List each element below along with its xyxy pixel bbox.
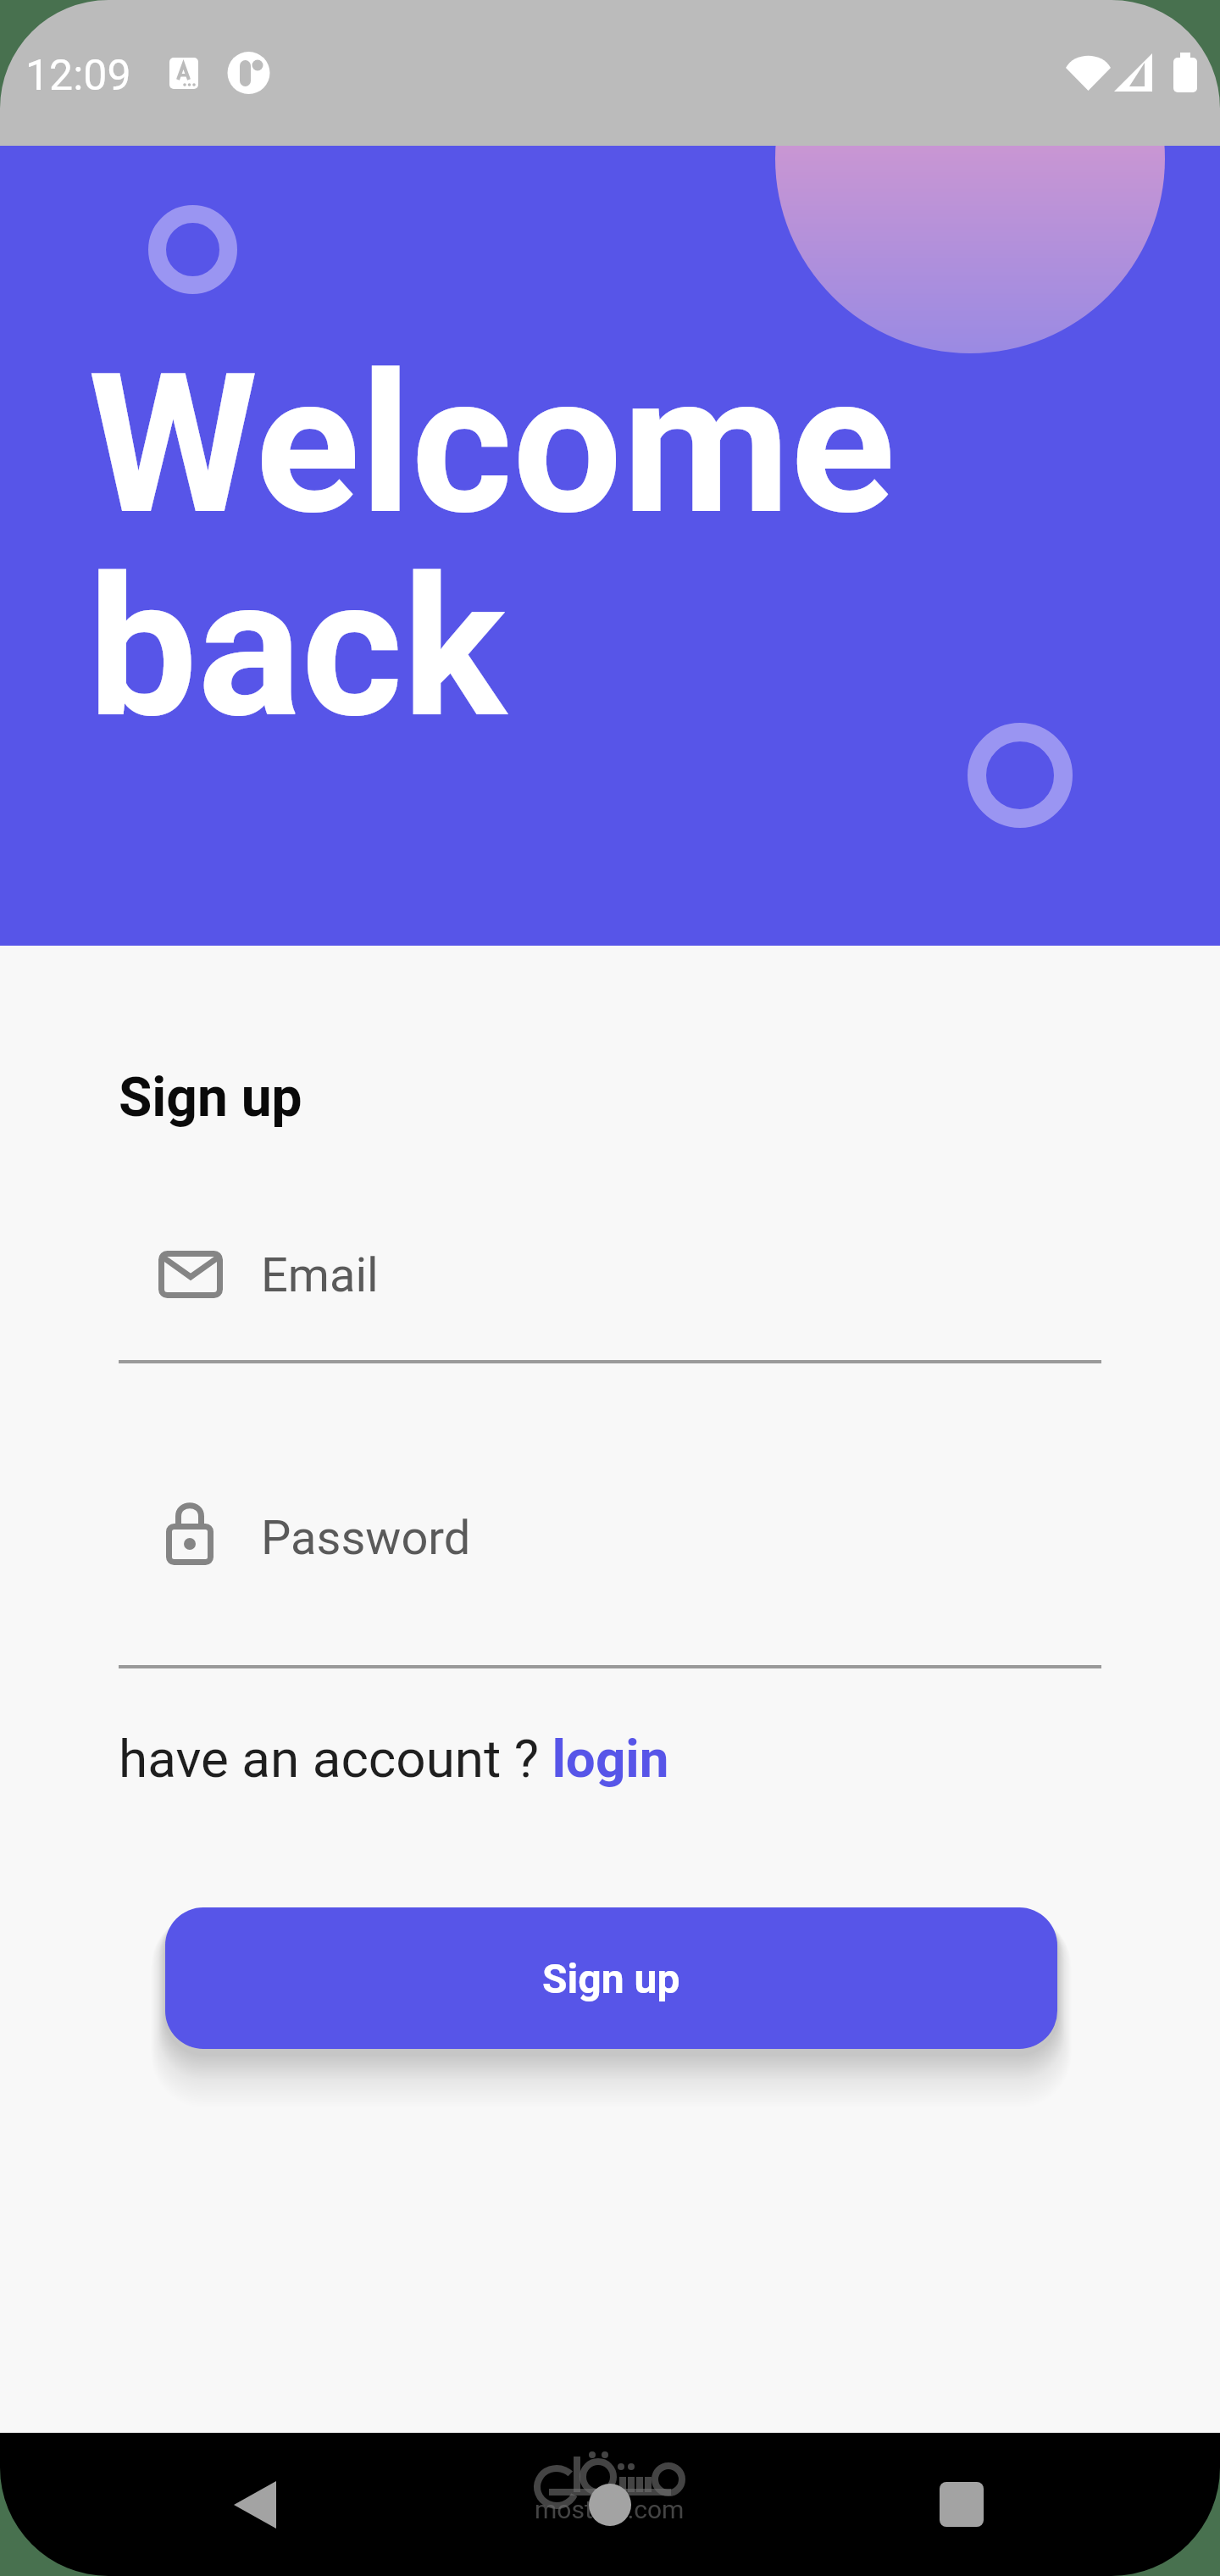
staticText: Sign up <box>542 1955 680 2002</box>
button[interactable]: Back <box>152 2433 457 2576</box>
staticText: mostaql.com <box>535 2495 685 2524</box>
button[interactable]: Home <box>457 2433 762 2576</box>
button[interactable]: Password <box>119 1496 1101 1674</box>
staticText: Welcome back <box>88 331 896 762</box>
button[interactable]: Recents <box>813 2433 1118 2576</box>
button[interactable]: Sign up <box>165 1907 1057 2049</box>
staticText: Sign up <box>119 1066 302 1130</box>
staticText: Password <box>261 1510 471 1566</box>
button[interactable]: Email <box>119 1233 1101 1368</box>
staticText: 12:09 <box>25 51 131 101</box>
button[interactable]: have an account ? login <box>119 1728 669 1790</box>
staticText: Email <box>261 1247 379 1303</box>
staticText: have an account ? login <box>119 1728 669 1790</box>
